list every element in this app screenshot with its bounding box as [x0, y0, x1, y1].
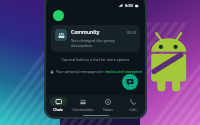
button[interactable]: Status: [95, 95, 120, 114]
staticText: 8:03: [125, 3, 133, 8]
button[interactable]: Chats: [46, 95, 70, 114]
staticText: You changed the group description: [71, 38, 136, 48]
button[interactable]: Communities: [70, 95, 95, 114]
staticText: Status: [103, 107, 113, 112]
staticText: Community: [71, 29, 100, 36]
staticText: 05:20: [127, 30, 136, 35]
staticText: Tap and hold on a chat for more options: [46, 57, 145, 62]
button[interactable]: New chat: [122, 74, 138, 90]
button[interactable]: Profile: [53, 10, 64, 21]
staticText: Calls: [129, 107, 137, 112]
staticText: Your personal messages are: [56, 69, 105, 74]
staticText: Chats: [53, 107, 63, 112]
staticText: end-to-end encrypted: [105, 69, 142, 74]
staticText: Communities: [72, 107, 94, 112]
button[interactable]: Community: [51, 25, 140, 52]
button[interactable]: Calls: [120, 95, 145, 114]
